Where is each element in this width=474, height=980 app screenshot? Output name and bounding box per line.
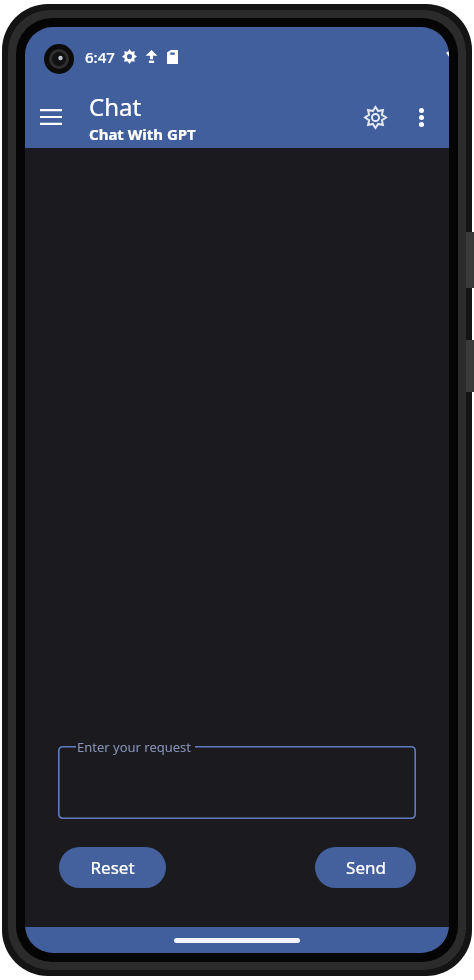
button[interactable]: Enter your request — [58, 746, 416, 819]
staticText: Chat With GPT — [89, 124, 196, 144]
button[interactable]: Open navigation menu — [25, 91, 77, 143]
button[interactable]: Home gesture bar — [174, 938, 300, 943]
staticText: Reset — [90, 856, 135, 879]
staticText: Enter your request — [77, 738, 192, 756]
staticText: 6:47 — [85, 47, 115, 67]
staticText: Chat — [89, 90, 142, 123]
button[interactable]: Reset — [59, 847, 166, 888]
staticText: Send — [346, 856, 386, 879]
button[interactable]: Settings — [351, 93, 399, 141]
button[interactable]: More options — [399, 95, 443, 139]
button[interactable]: Send — [315, 847, 416, 888]
